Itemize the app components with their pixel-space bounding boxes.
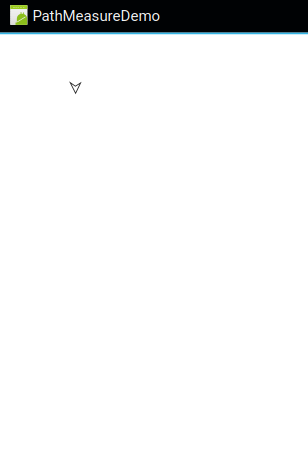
button[interactable]: PathMeasureDemo	[0, 0, 168, 32]
staticText: PathMeasureDemo	[32, 7, 160, 25]
